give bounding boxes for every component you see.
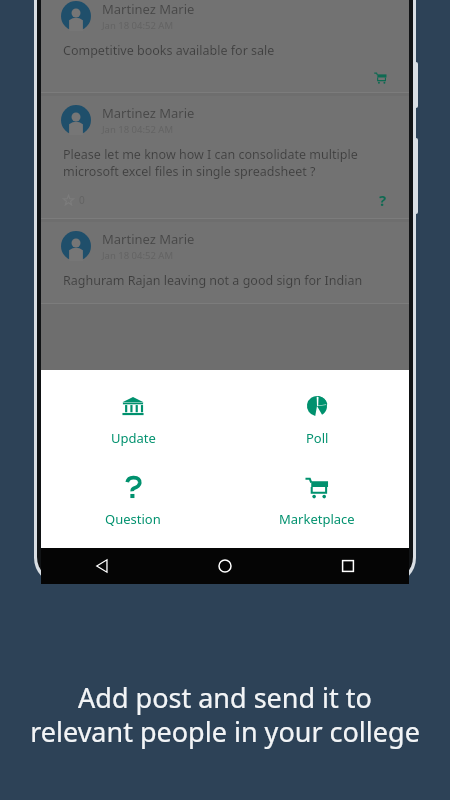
- button[interactable]: Update: [41, 388, 225, 453]
- staticText: Raghuram Rajan leaving not a good sign f…: [63, 272, 363, 289]
- staticText: Jan 18 04:52 AM: [102, 123, 174, 136]
- staticText: Martinez Marie: [102, 0, 195, 18]
- staticText: Jan 18 04:52 AM: [102, 249, 174, 262]
- button[interactable]: Poll: [225, 388, 409, 453]
- staticText: Update: [111, 429, 156, 447]
- staticText: 0: [79, 193, 85, 207]
- button[interactable]: Martinez Marie: [41, 0, 409, 93]
- staticText: Competitive books available for sale: [63, 42, 275, 59]
- staticText: Poll: [306, 429, 329, 447]
- button[interactable]: Home: [163, 548, 286, 584]
- staticText: Martinez Marie: [102, 104, 195, 122]
- button[interactable]: Question: [41, 469, 225, 534]
- staticText: Please let me know how I can consolidate…: [63, 146, 358, 180]
- staticText: Add post and send it to relevant people …: [28, 679, 422, 750]
- staticText: Martinez Marie: [102, 230, 195, 248]
- button[interactable]: Recents: [286, 548, 409, 584]
- staticText: Jan 18 04:52 AM: [102, 19, 174, 32]
- staticText: Marketplace: [279, 510, 355, 528]
- staticText: ?: [379, 190, 387, 210]
- button[interactable]: Marketplace: [225, 469, 409, 534]
- button[interactable]: Martinez Marie: [41, 96, 409, 219]
- button[interactable]: Back: [41, 548, 163, 584]
- staticText: Question: [105, 510, 161, 528]
- button[interactable]: Martinez Marie: [41, 222, 409, 304]
